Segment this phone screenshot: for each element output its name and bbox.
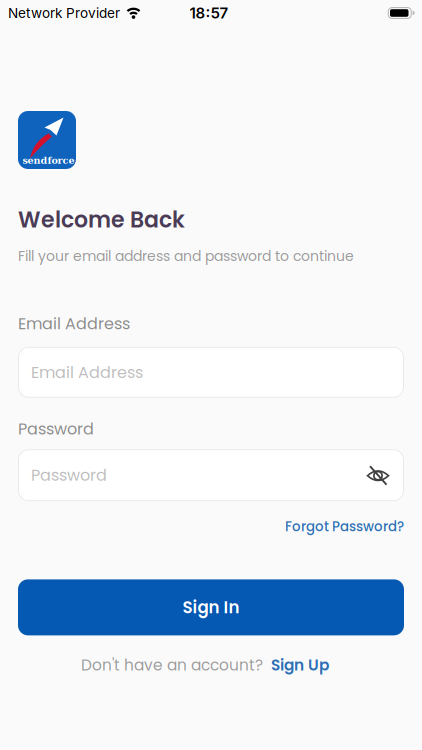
- staticText: Password: [31, 464, 107, 486]
- textField[interactable]: Email Address: [18, 347, 404, 398]
- staticText: 18:57: [189, 4, 228, 22]
- button[interactable]: Sign In: [18, 579, 404, 635]
- staticText: Sign Up: [271, 654, 329, 676]
- button[interactable]: Forgot Password?: [285, 517, 404, 536]
- staticText: Network Provider: [8, 5, 120, 21]
- staticText: Welcome Back: [18, 204, 185, 235]
- staticText: Email Address: [18, 312, 130, 335]
- staticText: Sign In: [182, 596, 239, 619]
- staticText: Forgot Password?: [285, 517, 404, 536]
- button[interactable]: Show password: [367, 464, 389, 486]
- staticText: Password: [18, 418, 94, 440]
- button[interactable]: Sign Up: [271, 654, 329, 676]
- textField[interactable]: Password: [18, 449, 404, 501]
- staticText: Fill your email address and password to …: [18, 246, 354, 266]
- staticText: Email Address: [31, 361, 143, 383]
- staticText: sendforce: [22, 155, 74, 166]
- staticText: Don't have an account?: [81, 654, 263, 676]
